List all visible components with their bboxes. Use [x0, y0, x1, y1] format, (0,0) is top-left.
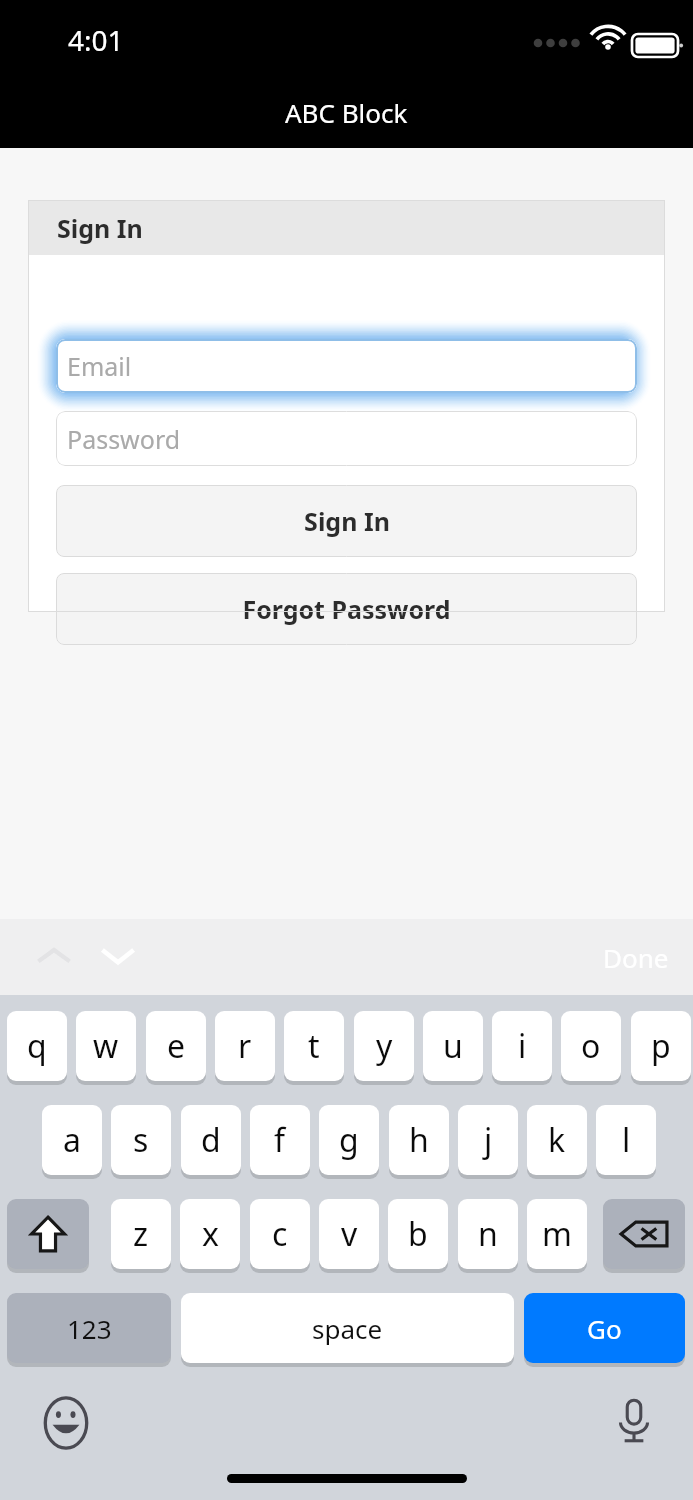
staticText: m: [542, 1212, 572, 1256]
staticText: k: [548, 1118, 566, 1162]
button[interactable]: a: [42, 1105, 102, 1175]
button[interactable]: m: [527, 1199, 587, 1269]
staticText: Forgot Password: [242, 592, 451, 626]
staticText: s: [133, 1118, 149, 1162]
staticText: b: [408, 1212, 428, 1256]
button[interactable]: z: [111, 1199, 171, 1269]
button[interactable]: d: [181, 1105, 241, 1175]
staticText: n: [478, 1212, 498, 1256]
button[interactable]: t: [284, 1011, 344, 1081]
button[interactable]: 123: [7, 1293, 171, 1363]
button[interactable]: b: [388, 1199, 448, 1269]
button[interactable]: Dictation: [608, 1395, 660, 1447]
staticText: w: [93, 1024, 119, 1068]
button[interactable]: x: [180, 1199, 240, 1269]
button[interactable]: e: [146, 1011, 206, 1081]
staticText: q: [27, 1024, 47, 1068]
staticText: d: [201, 1118, 221, 1162]
staticText: Go: [587, 1311, 622, 1346]
staticText: f: [274, 1118, 286, 1162]
staticText: j: [484, 1118, 493, 1162]
button[interactable]: n: [458, 1199, 518, 1269]
button[interactable]: s: [111, 1105, 171, 1175]
staticText: 4:01: [68, 21, 124, 59]
button[interactable]: Done: [591, 931, 681, 984]
button[interactable]: f: [250, 1105, 310, 1175]
button[interactable]: Forgot Password: [56, 573, 637, 645]
button[interactable]: space: [181, 1293, 514, 1363]
staticText: a: [63, 1118, 81, 1162]
button[interactable]: q: [7, 1011, 67, 1081]
staticText: e: [167, 1024, 186, 1068]
button[interactable]: Sign In: [56, 485, 637, 557]
staticText: c: [272, 1212, 288, 1256]
button[interactable]: Email: [56, 339, 637, 393]
staticText: g: [339, 1118, 359, 1162]
button[interactable]: j: [458, 1105, 518, 1175]
button[interactable]: p: [631, 1011, 691, 1081]
staticText: z: [133, 1212, 149, 1256]
button[interactable]: h: [389, 1105, 449, 1175]
button[interactable]: i: [492, 1011, 552, 1081]
button[interactable]: y: [354, 1011, 414, 1081]
button[interactable]: o: [561, 1011, 621, 1081]
staticText: t: [308, 1024, 320, 1068]
staticText: u: [443, 1024, 463, 1068]
button[interactable]: Shift: [7, 1199, 89, 1269]
staticText: 123: [67, 1311, 112, 1346]
staticText: o: [581, 1024, 601, 1068]
button[interactable]: Go: [524, 1293, 685, 1363]
staticText: l: [622, 1118, 631, 1162]
staticText: Password: [67, 422, 181, 456]
staticText: y: [376, 1024, 393, 1068]
staticText: i: [518, 1024, 527, 1068]
staticText: Sign In: [304, 504, 390, 538]
staticText: v: [341, 1212, 358, 1256]
staticText: h: [409, 1118, 429, 1162]
button[interactable]: g: [319, 1105, 379, 1175]
button[interactable]: l: [596, 1105, 656, 1175]
button[interactable]: u: [423, 1011, 483, 1081]
staticText: space: [312, 1311, 383, 1346]
button[interactable]: v: [319, 1199, 379, 1269]
button[interactable]: Emoji keyboard: [38, 1395, 94, 1451]
staticText: Done: [603, 940, 669, 975]
button[interactable]: Next field: [84, 935, 152, 979]
button[interactable]: r: [215, 1011, 275, 1081]
staticText: Sign In: [57, 211, 143, 245]
staticText: r: [238, 1024, 252, 1068]
button[interactable]: Password: [56, 411, 637, 466]
button[interactable]: w: [76, 1011, 136, 1081]
staticText: p: [651, 1024, 671, 1068]
button[interactable]: k: [527, 1105, 587, 1175]
button[interactable]: Backspace: [603, 1199, 685, 1269]
staticText: x: [202, 1212, 219, 1256]
staticText: ABC Block: [285, 95, 408, 130]
button[interactable]: c: [250, 1199, 310, 1269]
staticText: Email: [67, 349, 132, 383]
